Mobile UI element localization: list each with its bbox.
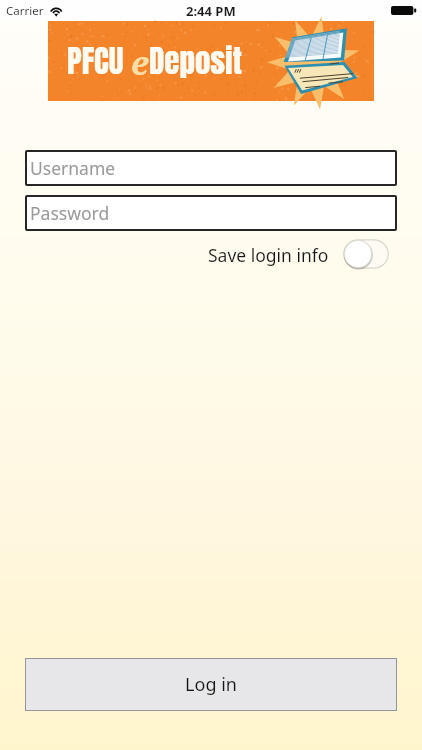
staticText: Password <box>30 201 110 225</box>
staticText: Username <box>30 156 116 180</box>
staticText: Carrier <box>6 3 44 19</box>
button[interactable]: Password <box>25 195 397 231</box>
button[interactable]: Save login info <box>343 239 389 269</box>
staticText: Deposit <box>149 38 243 85</box>
other: Wi-Fi <box>50 5 63 16</box>
other: Battery <box>391 6 416 15</box>
staticText: 2:44 PM <box>186 2 236 20</box>
button[interactable]: Save login info <box>208 243 329 267</box>
button[interactable]: Log in <box>25 658 397 711</box>
button[interactable]: Username <box>25 150 397 186</box>
staticText: Log in <box>185 672 237 697</box>
staticText: e <box>131 40 149 85</box>
staticText: PFCU <box>67 38 131 85</box>
